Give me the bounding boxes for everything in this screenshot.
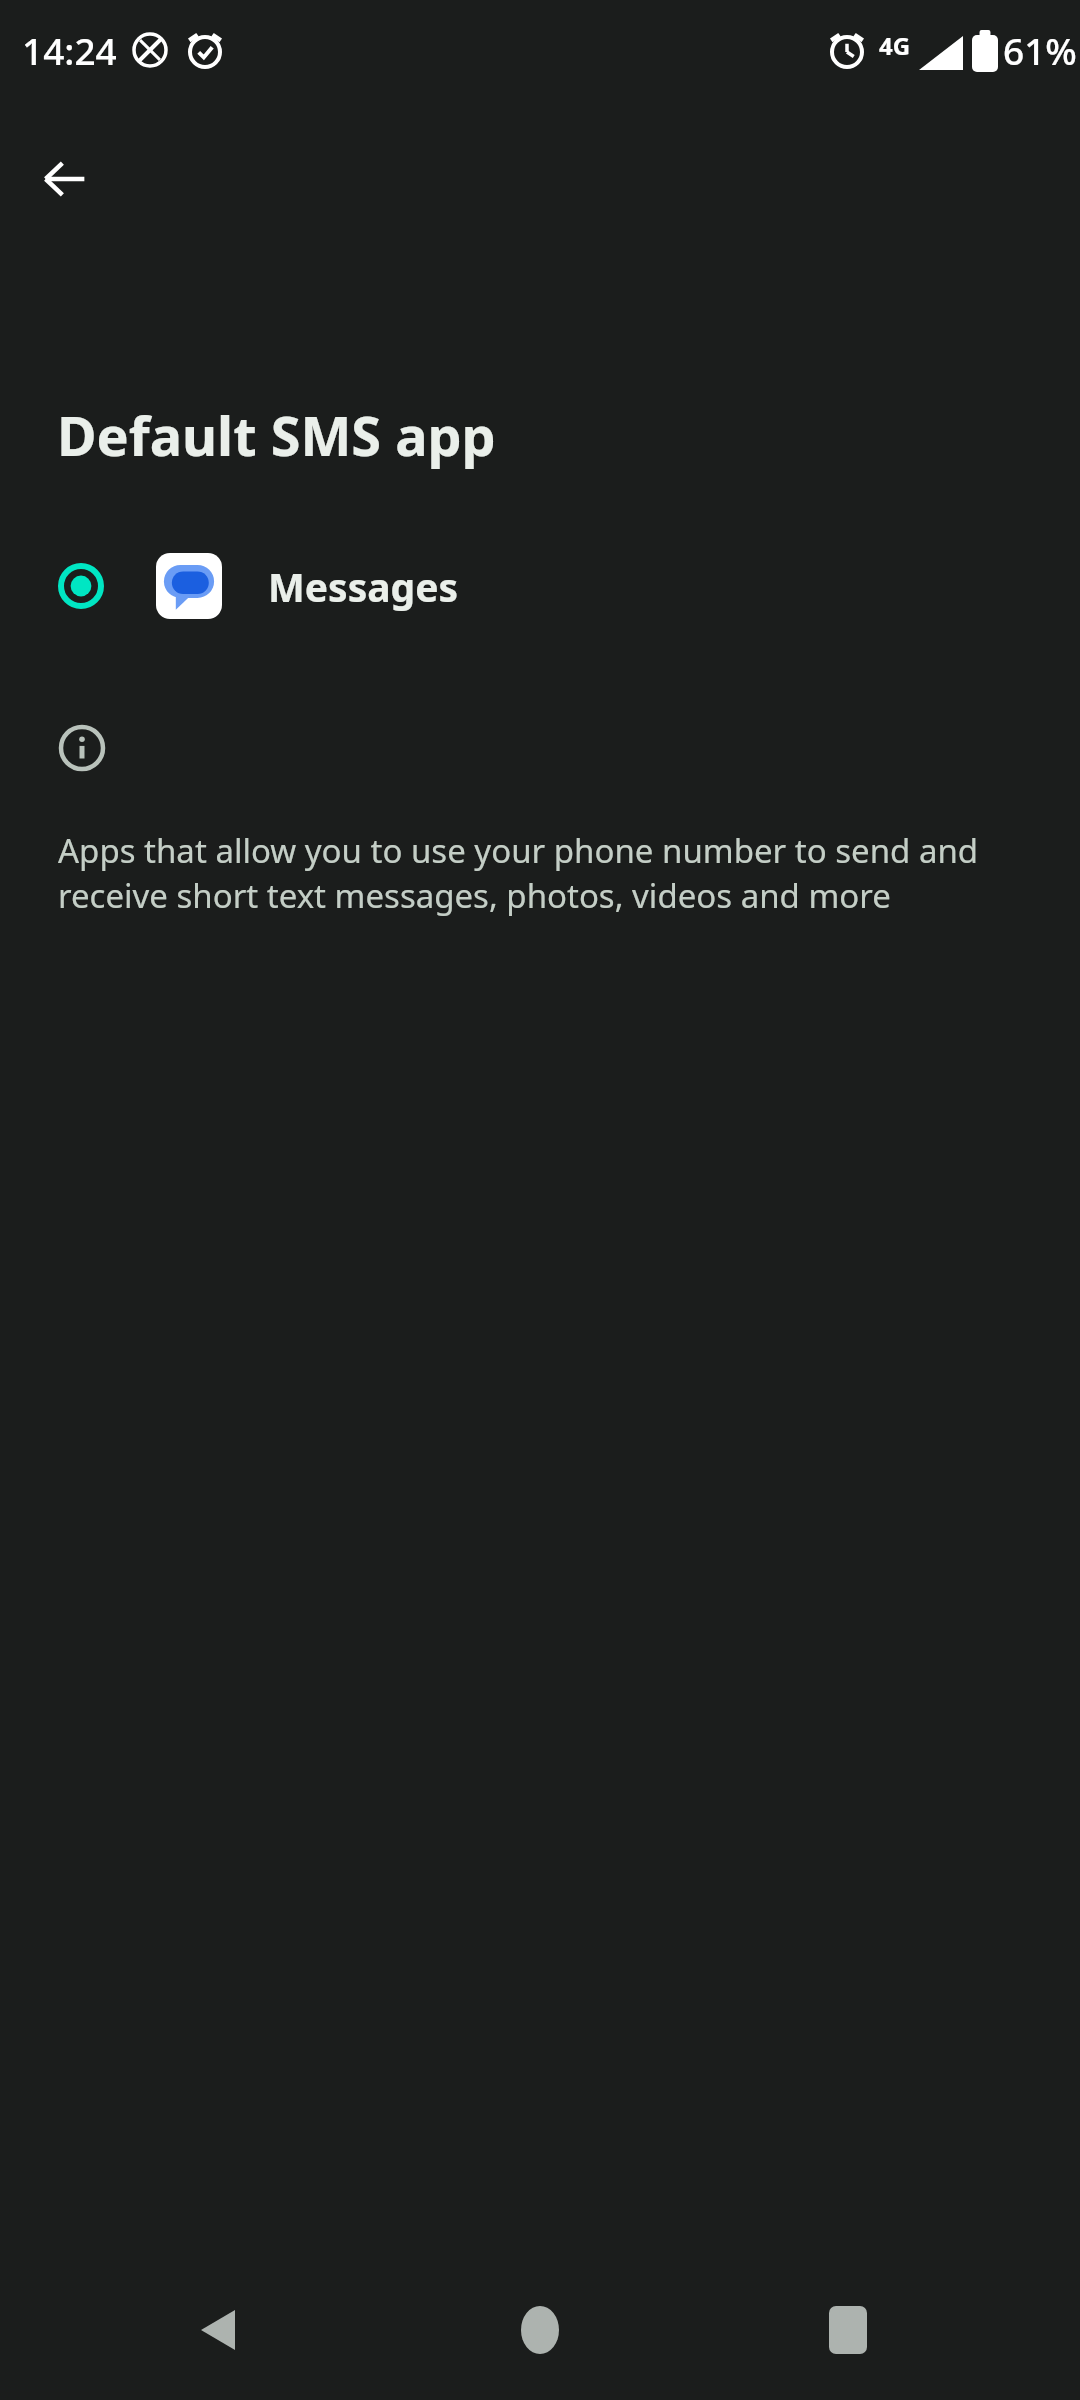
button[interactable]: Messages	[0, 534, 1080, 638]
staticText: Messages	[268, 560, 459, 613]
staticText: Apps that allow you to use your phone nu…	[58, 828, 1032, 917]
staticText: 14:24	[22, 25, 117, 75]
button[interactable]: Recent apps	[798, 2280, 898, 2380]
button[interactable]: Back	[168, 2280, 268, 2380]
staticText: Default SMS app	[57, 398, 496, 472]
staticText: 61%	[1003, 25, 1077, 75]
button[interactable]: Home	[490, 2280, 590, 2380]
button[interactable]: Back	[26, 140, 104, 218]
staticText: 4G	[879, 29, 911, 62]
